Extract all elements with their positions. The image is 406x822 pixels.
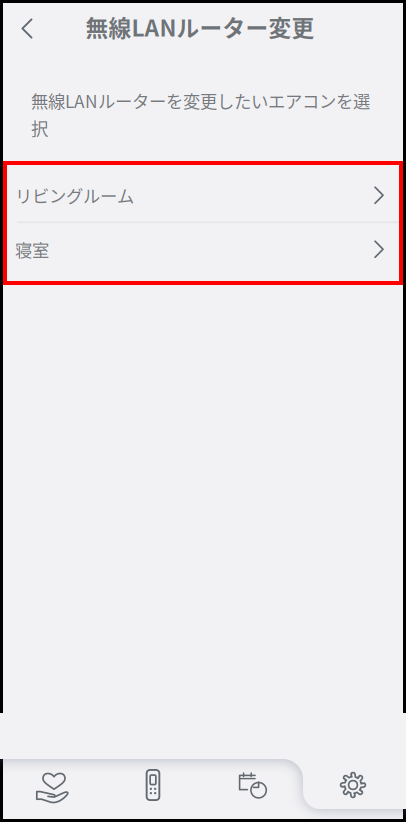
button[interactable]: 寝室 [3, 223, 403, 275]
button[interactable]: リビングルーム [3, 169, 403, 221]
staticText: リビングルーム [15, 183, 134, 208]
button[interactable]: Favorites [3, 760, 103, 810]
button[interactable]: Schedule [203, 760, 303, 810]
button[interactable]: Settings [303, 760, 403, 810]
button[interactable]: Remote [103, 760, 203, 810]
button[interactable]: Back [5, 6, 49, 50]
staticText: 寝室 [15, 237, 49, 262]
staticText: 無線LANルーター変更 [85, 10, 314, 43]
staticText: 無線LANルーターを変更したいエアコンを選択 [31, 88, 370, 140]
